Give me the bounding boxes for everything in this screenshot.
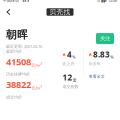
staticText: 套 [73, 78, 77, 83]
staticText: 历史挂牌均价 [6, 72, 30, 77]
staticText: 41508 [6, 55, 31, 68]
staticText: 8.83 [93, 49, 110, 60]
staticText: % [110, 54, 113, 60]
staticText: 朝晖 [6, 28, 28, 41]
staticText: 中国移动 ◂◂ ◂ [3, 0, 29, 3]
staticText: 关注 [100, 35, 110, 42]
staticText: 38822 [6, 78, 31, 91]
staticText: 元/m² [31, 62, 41, 68]
staticText: ⊙ ▮▮▸ 12:06 [97, 0, 117, 3]
button[interactable]: 关注 [96, 33, 114, 44]
button[interactable]: 查看全文 [89, 74, 105, 79]
button[interactable]: 贝壳找 [46, 8, 73, 16]
staticText: 4 [67, 49, 72, 60]
staticText: 最近更新: 2021-03-16 [6, 44, 42, 49]
staticText: % [72, 54, 75, 60]
staticText: 比上月 [62, 61, 74, 66]
staticText: 查看全文 [89, 74, 105, 79]
staticText: 贝壳找 [49, 8, 70, 16]
staticText: 最新均价 [6, 49, 22, 54]
button[interactable]: Back [2, 5, 15, 19]
staticText: 成交套数 [62, 84, 78, 89]
staticText: 比去年 [89, 61, 101, 66]
staticText: 12 [62, 72, 72, 83]
staticText: 元/m² [31, 85, 41, 91]
staticText: 成交均价 [6, 95, 22, 99]
